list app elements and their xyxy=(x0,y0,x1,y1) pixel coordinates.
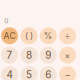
button[interactable]: 7 xyxy=(1,47,18,64)
staticText: ÷ xyxy=(65,31,71,41)
staticText: 8 xyxy=(26,49,32,61)
button[interactable]: − xyxy=(59,66,76,80)
button[interactable]: 5 xyxy=(20,66,37,80)
button[interactable]: % xyxy=(40,27,57,44)
staticText: 0 xyxy=(4,17,8,25)
staticText: ( ) xyxy=(25,31,33,41)
button[interactable]: 9 xyxy=(40,47,57,64)
button[interactable]: AC xyxy=(1,27,18,44)
staticText: % xyxy=(44,31,53,41)
button[interactable]: ( ) xyxy=(20,27,37,44)
button[interactable]: 4 xyxy=(1,66,18,80)
button[interactable]: ÷ xyxy=(59,27,76,44)
button[interactable]: 8 xyxy=(20,47,37,64)
staticText: 4 xyxy=(7,69,13,80)
staticText: × xyxy=(65,50,71,60)
staticText: AC xyxy=(4,31,16,41)
staticText: − xyxy=(65,69,71,80)
button[interactable]: × xyxy=(59,47,76,64)
staticText: 6 xyxy=(45,69,51,80)
staticText: 9 xyxy=(45,49,51,61)
staticText: 5 xyxy=(26,69,32,80)
button[interactable]: 6 xyxy=(40,66,57,80)
staticText: 7 xyxy=(7,49,13,61)
